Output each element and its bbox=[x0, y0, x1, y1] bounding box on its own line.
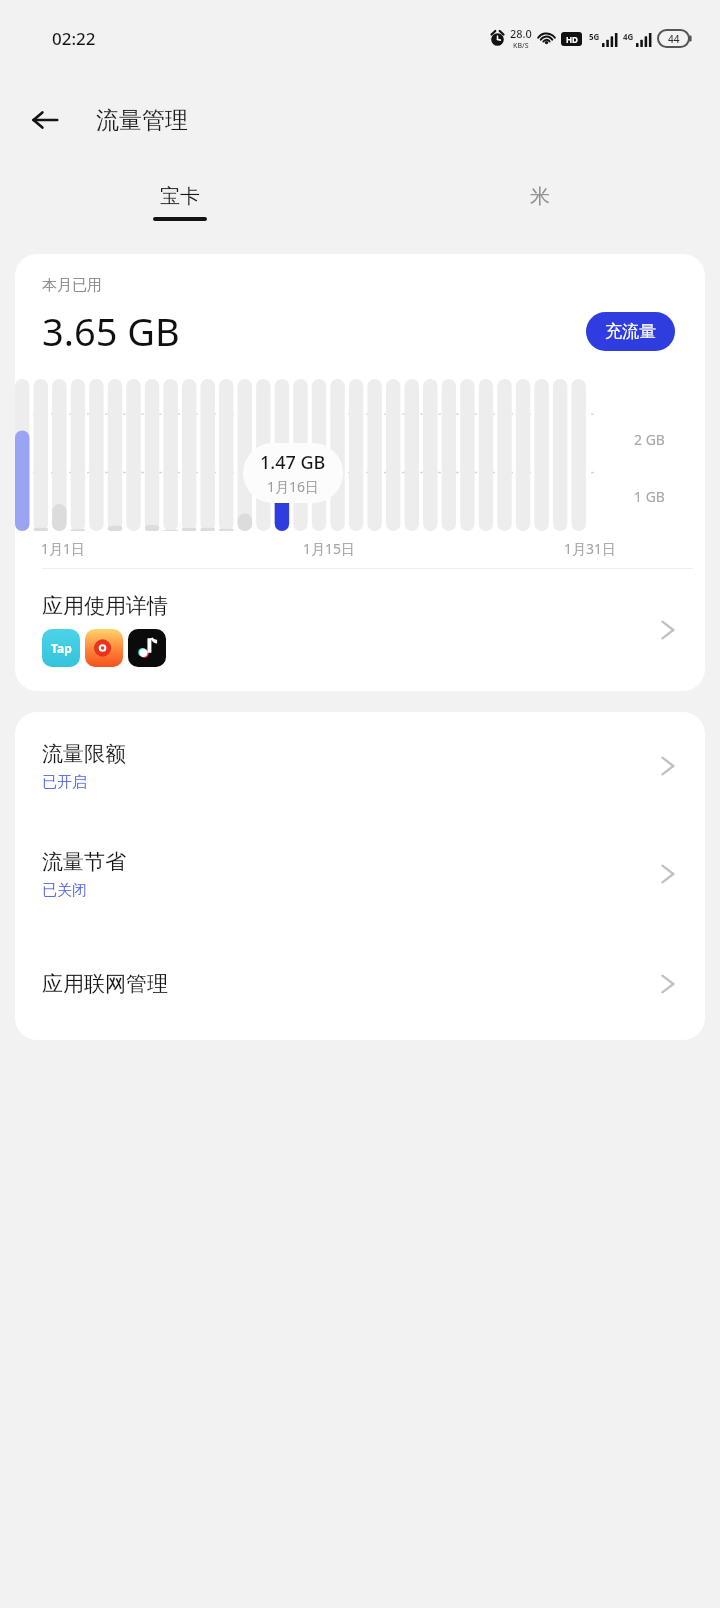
staticText: 本月已用 bbox=[42, 276, 102, 295]
staticText: 02:22 bbox=[52, 27, 96, 50]
button[interactable]: 流量节省 bbox=[15, 820, 705, 928]
staticText: 1月15日 bbox=[303, 539, 356, 558]
button[interactable]: 充流量 bbox=[586, 312, 675, 351]
button[interactable]: Back bbox=[22, 97, 68, 143]
staticText: 应用联网管理 bbox=[42, 971, 168, 997]
staticText: HD bbox=[566, 34, 578, 45]
staticText: 5G bbox=[589, 31, 600, 42]
button[interactable]: 米 bbox=[360, 164, 720, 240]
staticText: 3.65 GB bbox=[42, 305, 180, 357]
staticText: 1.47 GB bbox=[260, 450, 326, 475]
staticText: 米 bbox=[530, 184, 550, 209]
staticText: 流量管理 bbox=[96, 106, 188, 135]
staticText: 流量节省 bbox=[42, 849, 126, 875]
staticText: 4G bbox=[623, 31, 634, 42]
staticText: 2 GB bbox=[634, 430, 665, 449]
button[interactable]: 宝卡 bbox=[0, 164, 360, 240]
staticText: 已关闭 bbox=[42, 881, 87, 900]
staticText: 28.0 bbox=[510, 26, 532, 41]
button[interactable]: 应用联网管理 bbox=[15, 928, 705, 1040]
staticText: 应用使用详情 bbox=[42, 593, 168, 619]
staticText: 流量限额 bbox=[42, 741, 126, 767]
staticText: KB/S bbox=[513, 41, 529, 51]
staticText: 1月31日 bbox=[564, 539, 617, 558]
button[interactable]: 流量限额 bbox=[15, 712, 705, 820]
staticText: Tap bbox=[51, 640, 72, 656]
staticText: 44 bbox=[668, 32, 680, 46]
staticText: 宝卡 bbox=[160, 184, 200, 209]
staticText: 已开启 bbox=[42, 773, 87, 792]
button[interactable]: 应用使用详情 bbox=[15, 569, 705, 691]
staticText: 1月16日 bbox=[267, 477, 320, 496]
staticText: 充流量 bbox=[605, 321, 656, 342]
staticText: 1 GB bbox=[634, 487, 665, 506]
staticText: 1月1日 bbox=[41, 539, 86, 558]
